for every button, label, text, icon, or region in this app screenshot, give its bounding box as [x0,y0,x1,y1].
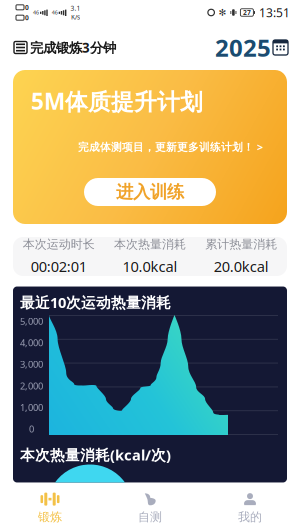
staticText: 46 [52,9,58,16]
button[interactable]: 进入训练 [84,178,216,206]
staticText: 13:51 [259,4,290,20]
staticText: 本次热量消耗 [114,237,186,252]
staticText: 3,000 [20,358,43,370]
staticText: 力量 1min [216,499,267,514]
staticText: K/s [71,12,80,21]
staticText: 0 [25,3,29,12]
staticText: 累计热量消耗 [205,237,277,252]
staticText: 5M体质提升计划 [31,86,203,116]
staticText: 本次运动时长 [23,237,95,252]
staticText: 0 [29,423,34,435]
staticText: 00:02:01 [31,257,87,276]
staticText: 完成锻炼3分钟 [30,39,116,56]
staticText: 20.0kcal [214,257,269,276]
staticText: 完成体测项目，更新更多训练计划！ [78,141,254,154]
button[interactable]: 完成体测项目，更新更多训练计划！ [78,140,263,154]
staticText: 0 [25,13,29,22]
staticText: 我的 [238,510,262,524]
staticText: 最近10次运动热量消耗 [20,292,171,312]
staticText: 1,000 [20,401,43,413]
staticText: 2025 [215,32,271,63]
staticText: 4,000 [20,336,43,349]
staticText: 46 [33,9,39,16]
staticText: 5,000 [20,315,43,327]
staticText: 27 [243,8,251,17]
button[interactable]: 锻炼 [0,486,100,530]
staticText: 进入训练 [116,181,184,203]
button[interactable]: 我的 [200,486,300,530]
button[interactable]: 完成锻炼3分钟 [14,39,116,56]
staticText: 自测 [138,510,162,524]
button[interactable]: 2025 [215,32,288,63]
staticText: ✻ [218,7,226,18]
staticText: 10.0kcal [122,257,177,276]
staticText: > [257,140,263,154]
button[interactable]: 自测 [100,486,200,530]
staticText: 2,000 [20,380,43,392]
staticText: 锻炼 [38,510,62,524]
staticText: 本次热量消耗(kcal/次) [20,445,171,464]
staticText: 3.1 [70,4,80,12]
